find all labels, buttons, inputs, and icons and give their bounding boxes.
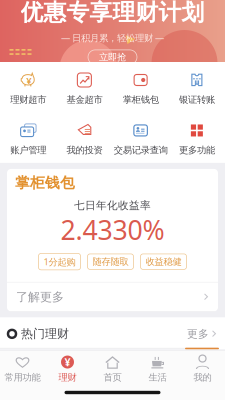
staticText: 我的 [193, 371, 211, 383]
staticText: 随存随取 [92, 256, 128, 267]
staticText: 首页 [103, 371, 121, 383]
staticText: 立即抢 [99, 51, 126, 63]
staticText: 掌柜钱包 [123, 94, 159, 105]
button[interactable]: 立即抢 [88, 50, 137, 64]
staticText: ¥ [26, 74, 31, 86]
button[interactable]: 我的 [180, 350, 225, 385]
staticText: 七日年化收益率 [74, 199, 151, 212]
staticText: 理财超市 [10, 94, 46, 105]
staticText: 交易记录查询 [114, 144, 168, 156]
button[interactable]: 更多功能 [169, 112, 225, 163]
staticText: 1分起购 [43, 255, 75, 268]
staticText: 掌柜钱包 [15, 174, 75, 192]
button[interactable]: 了解更多 [7, 283, 218, 311]
staticText: 我的投资 [66, 144, 102, 156]
staticText: ¥ [64, 355, 70, 369]
button[interactable]: 基金超市 [56, 62, 112, 112]
staticText: 了解更多 [16, 290, 64, 304]
button[interactable]: 交易记录查询 [112, 112, 169, 163]
button[interactable]: ¥ [45, 350, 90, 385]
staticText: 生活 [148, 371, 166, 383]
staticText: 银证转账 [179, 94, 215, 105]
button[interactable]: ¥ [0, 62, 56, 112]
button[interactable]: 我的投资 [56, 112, 112, 163]
staticText: 账户管理 [10, 144, 46, 156]
staticText: — 日积月累，轻松理财 — [61, 31, 164, 44]
staticText: 更多 [187, 327, 209, 340]
button[interactable]: 生活 [135, 350, 180, 385]
button[interactable]: 银证转账 [169, 62, 225, 112]
button[interactable]: 常用功能 [0, 350, 45, 385]
staticText: 优惠专享理财计划 [20, 0, 204, 26]
button[interactable]: 掌柜钱包 [112, 62, 169, 112]
button[interactable]: 首页 [90, 350, 135, 385]
button[interactable]: 账户管理 [0, 112, 56, 163]
staticText: 收益稳健 [145, 256, 181, 267]
button[interactable]: 更多 [187, 324, 217, 343]
staticText: 理财 [58, 371, 76, 383]
staticText: 更多功能 [179, 144, 215, 156]
staticText: 2.4330% [60, 212, 164, 247]
staticText: 基金超市 [66, 94, 102, 105]
staticText: 常用功能 [4, 371, 40, 383]
staticText: 热门理财 [21, 326, 69, 341]
